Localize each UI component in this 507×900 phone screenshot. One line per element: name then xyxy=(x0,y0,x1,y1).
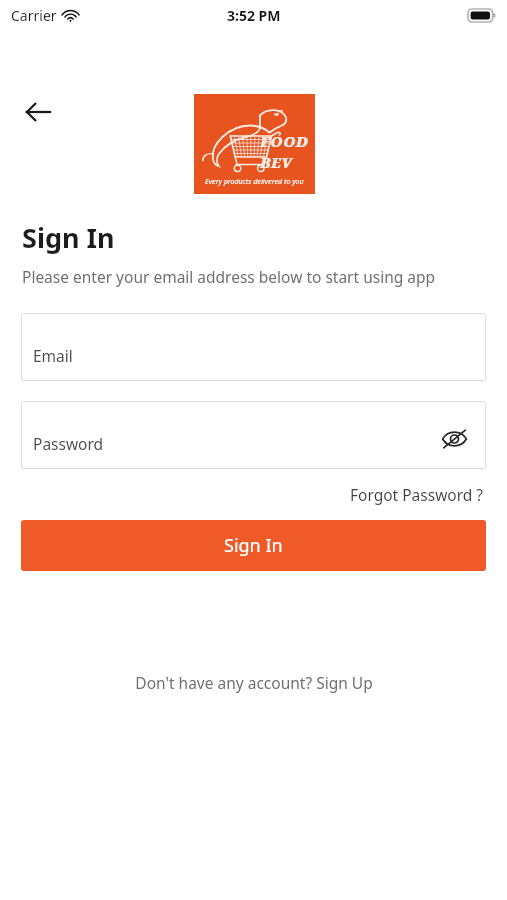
staticText: Every products delivered to you xyxy=(205,177,304,187)
staticText: Sign In xyxy=(224,533,283,558)
staticText: Sign In xyxy=(22,219,115,256)
button[interactable]: Show password xyxy=(437,422,471,456)
staticText: Please enter your email address below to… xyxy=(22,266,436,287)
button[interactable]: Sign In xyxy=(21,520,486,571)
staticText: FOOD xyxy=(260,131,309,151)
button[interactable]: Forgot Password ? xyxy=(348,482,486,507)
staticText: Don't have any account? Sign Up xyxy=(135,672,373,693)
staticText: Forgot Password ? xyxy=(350,484,484,505)
staticText: Email xyxy=(33,345,73,366)
staticText: 3:52 PM xyxy=(227,6,281,25)
button[interactable]: Password xyxy=(21,401,486,469)
staticText: Carrier xyxy=(11,6,57,25)
button[interactable]: Email xyxy=(21,313,486,381)
staticText: Password xyxy=(33,433,104,454)
staticText: BEV xyxy=(260,152,293,172)
button[interactable]: Back xyxy=(20,94,56,130)
button[interactable]: Don't have any account? Sign Up xyxy=(129,668,379,697)
